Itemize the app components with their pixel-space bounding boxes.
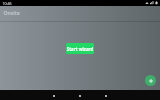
button[interactable]: Home bbox=[76, 92, 84, 100]
button[interactable]: Recents bbox=[102, 92, 110, 100]
staticText: Start wizard bbox=[66, 46, 94, 52]
staticText: Onsite bbox=[3, 9, 20, 16]
staticText: 10:46 bbox=[2, 1, 12, 6]
button[interactable]: Add bbox=[145, 75, 156, 86]
button[interactable]: Onsite bbox=[3, 6, 20, 18]
button[interactable]: Start wizard bbox=[66, 43, 94, 54]
button[interactable]: Back bbox=[50, 92, 58, 100]
